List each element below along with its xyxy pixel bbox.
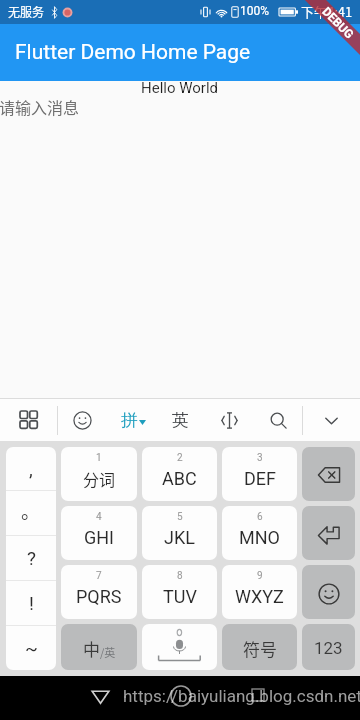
staticText: ! [29,592,34,614]
button[interactable]: , [6,447,56,490]
staticText: 3 [257,452,263,464]
staticText: DEBUG [319,4,357,42]
button[interactable]: 3 [222,447,297,501]
staticText: 请输入消息 [0,95,80,118]
staticText: GHI [84,527,114,548]
staticText: 100% [240,4,270,18]
staticText: 英 [172,410,189,431]
staticText: DEF [244,468,276,489]
button[interactable]: ? [6,536,56,580]
staticText: /英 [100,644,116,660]
staticText: 无服务 [8,3,45,20]
button[interactable]: Backspace [302,447,355,501]
button[interactable]: 8 [142,565,217,619]
staticText: ~ [25,637,38,659]
button[interactable]: Space [142,624,217,670]
staticText: Flutter Demo Home Page [15,40,251,65]
staticText: , [29,458,33,480]
button[interactable]: 中 [61,624,137,670]
button[interactable]: 拼 [111,399,155,441]
button[interactable]: ~ [6,626,56,670]
staticText: 。 [21,497,41,525]
button[interactable]: 9 [222,565,297,619]
button[interactable]: 4 [61,506,137,560]
button[interactable]: Search [258,399,298,441]
staticText: ABC [162,468,197,489]
staticText: 9 [257,570,263,582]
button[interactable]: 2 [142,447,217,501]
staticText: 下午4:41 [301,2,353,21]
staticText: WXYZ [235,586,284,607]
staticText: PQRS [76,586,122,607]
staticText: JKL [164,527,195,548]
button[interactable]: 。 [6,491,56,535]
staticText: 中 [83,636,100,661]
button[interactable]: 123 [302,624,355,670]
staticText: 分词 [83,467,116,490]
staticText: 4 [96,511,102,523]
staticText: 1 [96,452,102,464]
button[interactable]: Back [87,683,113,709]
button[interactable]: Keyboard layouts [9,399,49,441]
staticText: 符号 [243,636,277,661]
button[interactable]: 5 [142,506,217,560]
staticText: 5 [177,511,183,523]
staticText: 8 [177,570,183,582]
staticText: 6 [257,511,263,523]
button[interactable]: 6 [222,506,297,560]
button[interactable]: 7 [61,565,137,619]
button[interactable]: Enter [302,506,355,560]
staticText: ? [27,547,36,569]
button[interactable]: Emoji [302,565,355,619]
button[interactable]: 1 [61,447,137,501]
button[interactable]: 符号 [222,624,297,670]
staticText: TUV [163,586,197,607]
staticText: 7 [96,570,102,582]
staticText: https://baiyuliang.blog.csdn.net [123,686,360,706]
button[interactable]: Emoji [62,399,102,441]
staticText: MNO [239,527,280,548]
button[interactable]: Move cursor [209,399,249,441]
button[interactable]: ! [6,581,56,625]
staticText: 2 [177,452,183,464]
staticText: 拼 [121,410,138,431]
staticText: 123 [314,638,343,658]
staticText: Hello World [141,79,219,97]
button[interactable]: Hide keyboard [311,399,351,441]
button[interactable]: 英 [160,399,200,441]
